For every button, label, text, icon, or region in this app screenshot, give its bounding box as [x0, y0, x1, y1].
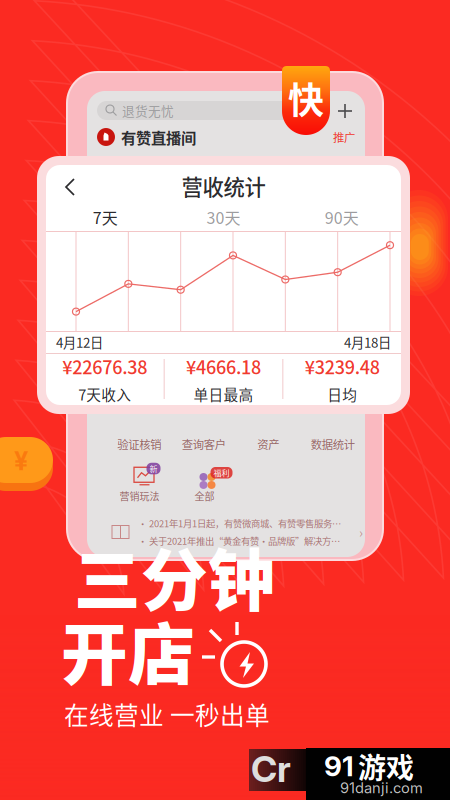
staticText: 退货无忧 — [122, 101, 174, 120]
staticText: 90天 — [325, 205, 359, 229]
staticText: 营销玩法 — [119, 489, 159, 503]
staticText: 资产 — [257, 436, 279, 452]
staticText: 7天收入 — [78, 383, 131, 405]
staticText: 91 — [324, 749, 354, 783]
staticText: 91danji.com — [340, 779, 423, 797]
staticText: 游戏 — [358, 746, 414, 786]
button[interactable]: 7天 — [46, 205, 164, 229]
staticText: 4月18日 — [344, 332, 391, 352]
staticText: 查询客户 — [182, 436, 226, 452]
staticText: › — [359, 522, 363, 542]
button[interactable]: 30天 — [164, 205, 283, 229]
staticText: 在线营业 一秒出单 — [64, 696, 270, 732]
staticText: 30天 — [206, 205, 240, 229]
staticText: ¥22676.38 — [62, 353, 147, 379]
staticText: ¥3239.48 — [305, 353, 380, 379]
staticText: • 关于2021年推出“黄金有赞·品牌版”解决方案… — [138, 534, 343, 547]
staticText: 4月12日 — [56, 332, 103, 352]
staticText: 新 — [149, 463, 157, 474]
staticText: 有赞直播间 — [121, 126, 196, 148]
staticText: 开店 — [61, 602, 195, 698]
button[interactable]: Add — [335, 101, 355, 121]
staticText: 单日最高 — [193, 383, 253, 405]
button[interactable]: 90天 — [283, 205, 401, 229]
staticText: 数据统计 — [311, 436, 355, 452]
staticText: 营收统计 — [181, 171, 265, 201]
staticText: 日均 — [327, 383, 357, 405]
staticText: 快 — [288, 72, 324, 124]
staticText: 验证核销 — [117, 436, 161, 452]
staticText: 推广 — [333, 129, 355, 145]
button[interactable]: Back — [58, 174, 84, 200]
staticText: 福利 — [213, 467, 229, 479]
staticText: 全部 — [194, 489, 214, 503]
staticText: ¥4666.18 — [186, 353, 261, 379]
staticText: • 2021年1月1日起，有赞微商城、有赞零售服务… — [138, 516, 341, 530]
staticText: ¥ — [14, 446, 28, 476]
staticText: 三分钟 — [74, 528, 275, 624]
staticText: 7天 — [93, 205, 118, 229]
staticText: Cr — [251, 747, 291, 791]
